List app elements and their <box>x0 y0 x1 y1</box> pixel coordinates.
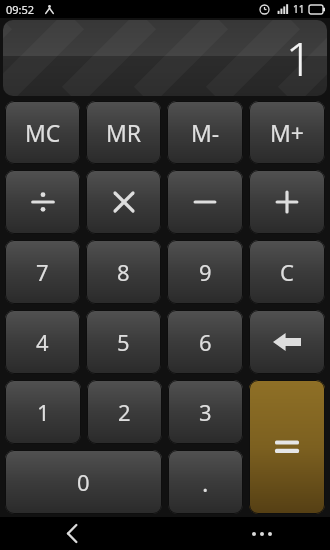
staticText: 8 <box>117 257 130 287</box>
button[interactable]: Back <box>54 517 90 550</box>
staticText: 1 <box>37 397 50 427</box>
button[interactable]: MC <box>5 101 80 164</box>
button[interactable]: 9 <box>167 240 243 304</box>
button[interactable]: MR <box>86 101 161 164</box>
staticText: 6 <box>199 327 212 357</box>
staticText: MC <box>25 117 61 148</box>
button[interactable]: Equals <box>249 380 325 514</box>
button[interactable]: 6 <box>167 310 243 374</box>
button[interactable]: Plus <box>249 170 325 234</box>
staticText: 0 <box>77 467 90 497</box>
staticText: 09:52 <box>6 2 35 17</box>
staticText: . <box>202 466 209 499</box>
staticText: C <box>280 257 294 287</box>
staticText: 3 <box>199 397 212 427</box>
staticText: M+ <box>270 117 305 148</box>
button[interactable]: . <box>168 450 243 514</box>
button[interactable]: 4 <box>5 310 80 374</box>
staticText: 2 <box>118 397 131 427</box>
button[interactable]: Divide <box>5 170 80 234</box>
staticText: 4 <box>36 327 49 357</box>
button[interactable]: 0 <box>5 450 162 514</box>
button[interactable]: Minus <box>167 170 243 234</box>
button[interactable]: 5 <box>86 310 161 374</box>
staticText: MR <box>106 117 142 148</box>
button[interactable]: 1 <box>5 380 81 444</box>
staticText: M- <box>191 117 220 148</box>
staticText: 1 <box>286 27 313 90</box>
button[interactable]: M- <box>167 101 243 164</box>
staticText: 5 <box>117 327 130 357</box>
button[interactable]: Multiply <box>86 170 161 234</box>
button[interactable]: 8 <box>86 240 161 304</box>
button[interactable]: Backspace <box>249 310 325 374</box>
button[interactable]: More options <box>244 517 280 550</box>
staticText: 11 <box>293 2 305 16</box>
staticText: 9 <box>199 257 212 287</box>
button[interactable]: C <box>249 240 325 304</box>
staticText: 7 <box>36 257 49 287</box>
button[interactable]: 3 <box>168 380 243 444</box>
button[interactable]: 2 <box>87 380 162 444</box>
button[interactable]: 7 <box>5 240 80 304</box>
button[interactable]: M+ <box>249 101 325 164</box>
